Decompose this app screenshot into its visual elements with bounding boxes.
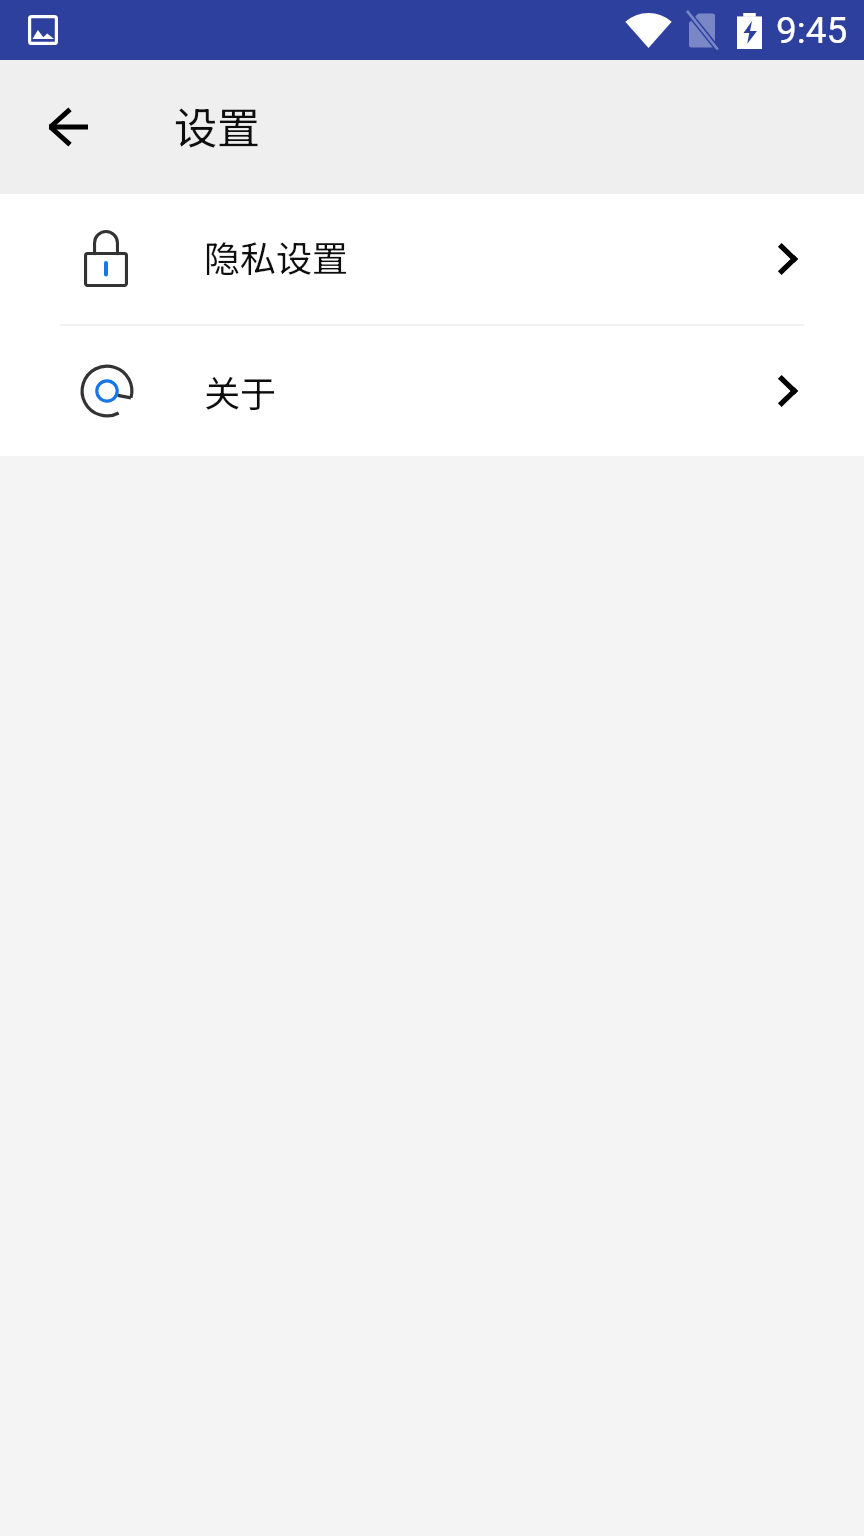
button[interactable]: Privacy settings bbox=[0, 194, 864, 324]
button[interactable]: Back bbox=[20, 79, 116, 175]
staticText: 设置 bbox=[174, 94, 260, 156]
staticText: 9:45 bbox=[776, 9, 848, 52]
button[interactable]: About bbox=[0, 325, 864, 456]
staticText: 关于 bbox=[204, 365, 277, 417]
staticText: 隐私设置 bbox=[204, 230, 349, 282]
